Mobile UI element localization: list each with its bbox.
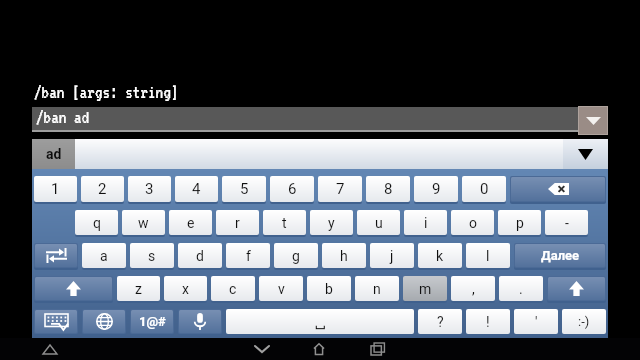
button[interactable]: 5 [222,176,266,202]
button[interactable]: 4 [175,176,218,202]
button[interactable]: 0 [462,176,506,202]
staticText: 7 [336,180,345,198]
button[interactable]: z [117,276,160,301]
staticText: s [148,248,156,264]
staticText: n [373,281,381,297]
button[interactable]: i [404,210,447,235]
staticText: q [93,215,101,231]
button[interactable]: 9 [414,176,458,202]
staticText: 8 [384,180,393,198]
staticText: . [519,281,523,297]
staticText: 6 [288,180,297,198]
staticText: ! [486,314,490,330]
button[interactable]: ad [32,139,75,169]
button[interactable]: . [499,276,543,301]
button[interactable]: w [122,210,165,235]
button[interactable]: , [451,276,495,301]
button[interactable]: ? [418,309,462,334]
staticText: e [187,215,195,231]
button[interactable]: 3 [128,176,171,202]
staticText: b [325,281,333,297]
button[interactable]: Home [303,338,335,360]
staticText: ? [437,314,444,330]
button[interactable]: Show command suggestions [579,107,607,134]
button[interactable]: c [211,276,255,301]
staticText: :-) [578,314,590,329]
button[interactable]: n [355,276,399,301]
button[interactable]: ! [466,309,510,334]
staticText: 1@# [139,314,166,329]
staticText: f [246,248,251,264]
button[interactable]: :-) [562,309,606,334]
staticText: j [390,248,394,264]
button[interactable]: Back [246,339,278,359]
staticText: l [486,248,490,264]
staticText: 0 [480,180,489,198]
button[interactable]: Shift [548,277,605,300]
staticText: x [182,281,189,297]
button[interactable]: t [263,210,306,235]
button[interactable]: 8 [366,176,410,202]
button[interactable]: b [307,276,351,301]
staticText: ad [46,146,62,162]
button[interactable]: Voice input [179,310,221,333]
button[interactable]: h [322,243,366,268]
staticText: t [282,215,287,231]
button[interactable]: Hide keyboard [35,310,77,333]
button[interactable]: l [466,243,510,268]
staticText: c [229,281,237,297]
staticText: 1 [51,180,60,198]
staticText: v [278,281,285,297]
button[interactable]: v [259,276,303,301]
button[interactable]: 6 [270,176,314,202]
button[interactable]: 1 [34,176,77,202]
staticText: w [138,215,149,231]
button[interactable]: Change language [83,310,125,333]
button[interactable]: f [226,243,270,268]
staticText: u [375,215,383,231]
staticText: r [235,215,240,231]
button[interactable]: s [130,243,174,268]
staticText: i [424,215,428,231]
button[interactable]: u [357,210,400,235]
button[interactable]: ' [514,309,558,334]
staticText: , [472,281,475,297]
staticText: d [196,248,204,264]
button[interactable]: 7 [318,176,362,202]
button[interactable]: Recent apps [362,338,394,360]
staticText: o [469,215,477,231]
button[interactable]: a [82,243,126,268]
button[interactable]: Далее [515,244,605,267]
button[interactable]: x [164,276,207,301]
staticText: h [340,248,348,264]
button[interactable]: j [370,243,414,268]
staticText: /ban ad [36,108,90,127]
staticText: k [436,248,444,264]
button[interactable]: 2 [81,176,124,202]
button[interactable]: m [403,276,447,301]
staticText: ␣ [315,312,326,331]
staticText: 4 [192,180,201,198]
button[interactable]: 1@# [131,310,173,333]
staticText: g [292,248,300,264]
button[interactable]: y [310,210,353,235]
button[interactable]: e [169,210,212,235]
button[interactable]: More suggestions [563,139,608,169]
button[interactable]: Home [36,340,64,358]
button[interactable]: p [498,210,541,235]
button[interactable]: g [274,243,318,268]
button[interactable]: r [216,210,259,235]
button[interactable]: d [178,243,222,268]
button[interactable]: /ban ad [32,107,608,130]
button[interactable]: Shift [35,277,112,300]
staticText: Далее [541,248,580,263]
button[interactable]: - [545,210,588,235]
button[interactable]: o [451,210,494,235]
button[interactable]: q [75,210,118,235]
button[interactable]: Backspace [511,177,605,201]
staticText: p [516,215,524,231]
button[interactable]: ␣ [226,309,414,334]
button[interactable]: Tab [35,244,77,267]
staticText: 9 [432,180,441,198]
button[interactable]: k [418,243,462,268]
